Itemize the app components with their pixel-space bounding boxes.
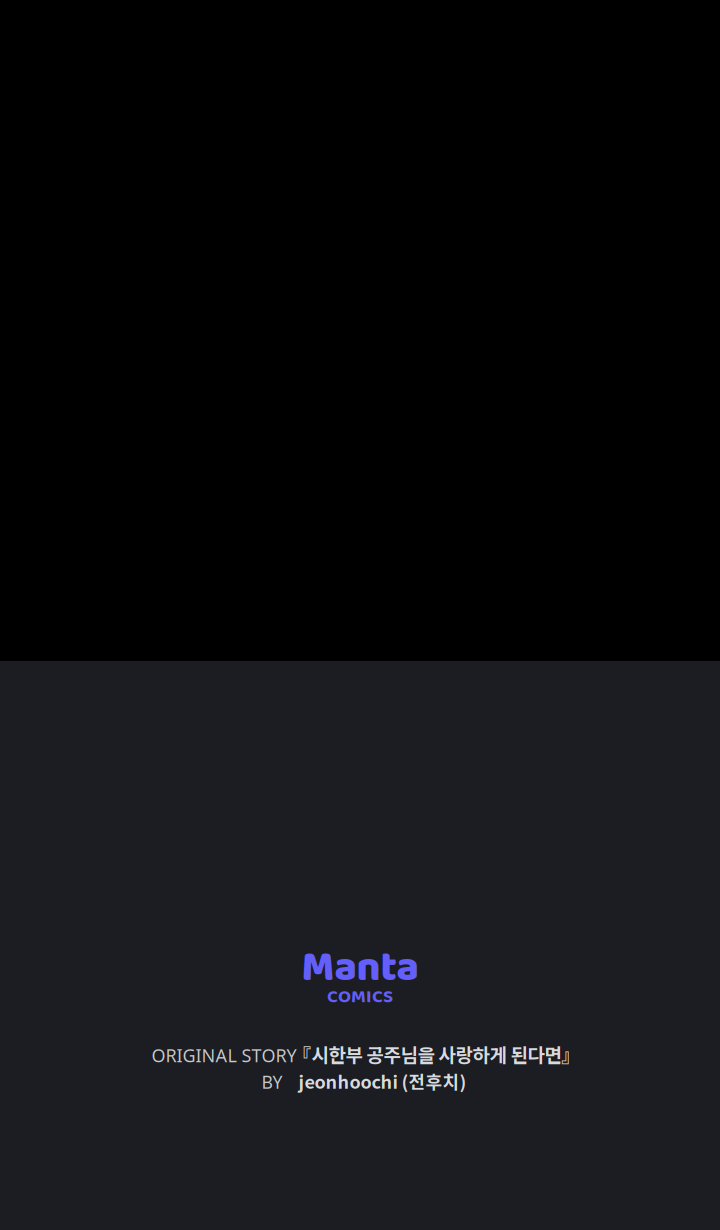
staticText: ORIGINAL STORY (151, 1043, 296, 1067)
button[interactable]: Manta (301, 951, 418, 1005)
staticText: 『시한부 공주님을 사랑하게 된다면』 (292, 1040, 580, 1068)
staticText: Manta (301, 935, 418, 1001)
staticText: COMICS (327, 982, 393, 1012)
staticText: jeonhoochi (전후치) (298, 1068, 466, 1094)
staticText: BY (261, 1070, 282, 1094)
